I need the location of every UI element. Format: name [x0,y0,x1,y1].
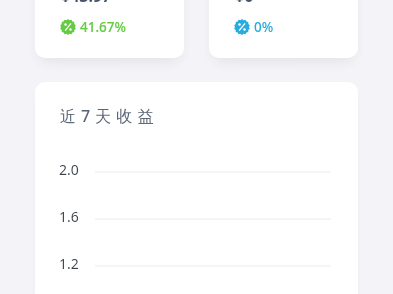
button[interactable]: 近 7 天 收 益 [35,82,358,294]
button[interactable]: ¥43.97 [35,0,184,58]
staticText: 1.6 [59,207,79,223]
button[interactable]: ¥0 [209,0,358,58]
staticText: 1.2 [59,254,79,270]
staticText: 近 7 天 收 益 [60,105,154,127]
staticText: 0% [254,18,274,36]
staticText: 41.67% [80,18,127,36]
staticText: 2.0 [59,160,79,176]
staticText: ¥43.97 [61,0,112,7]
staticText: ¥0 [235,0,254,7]
